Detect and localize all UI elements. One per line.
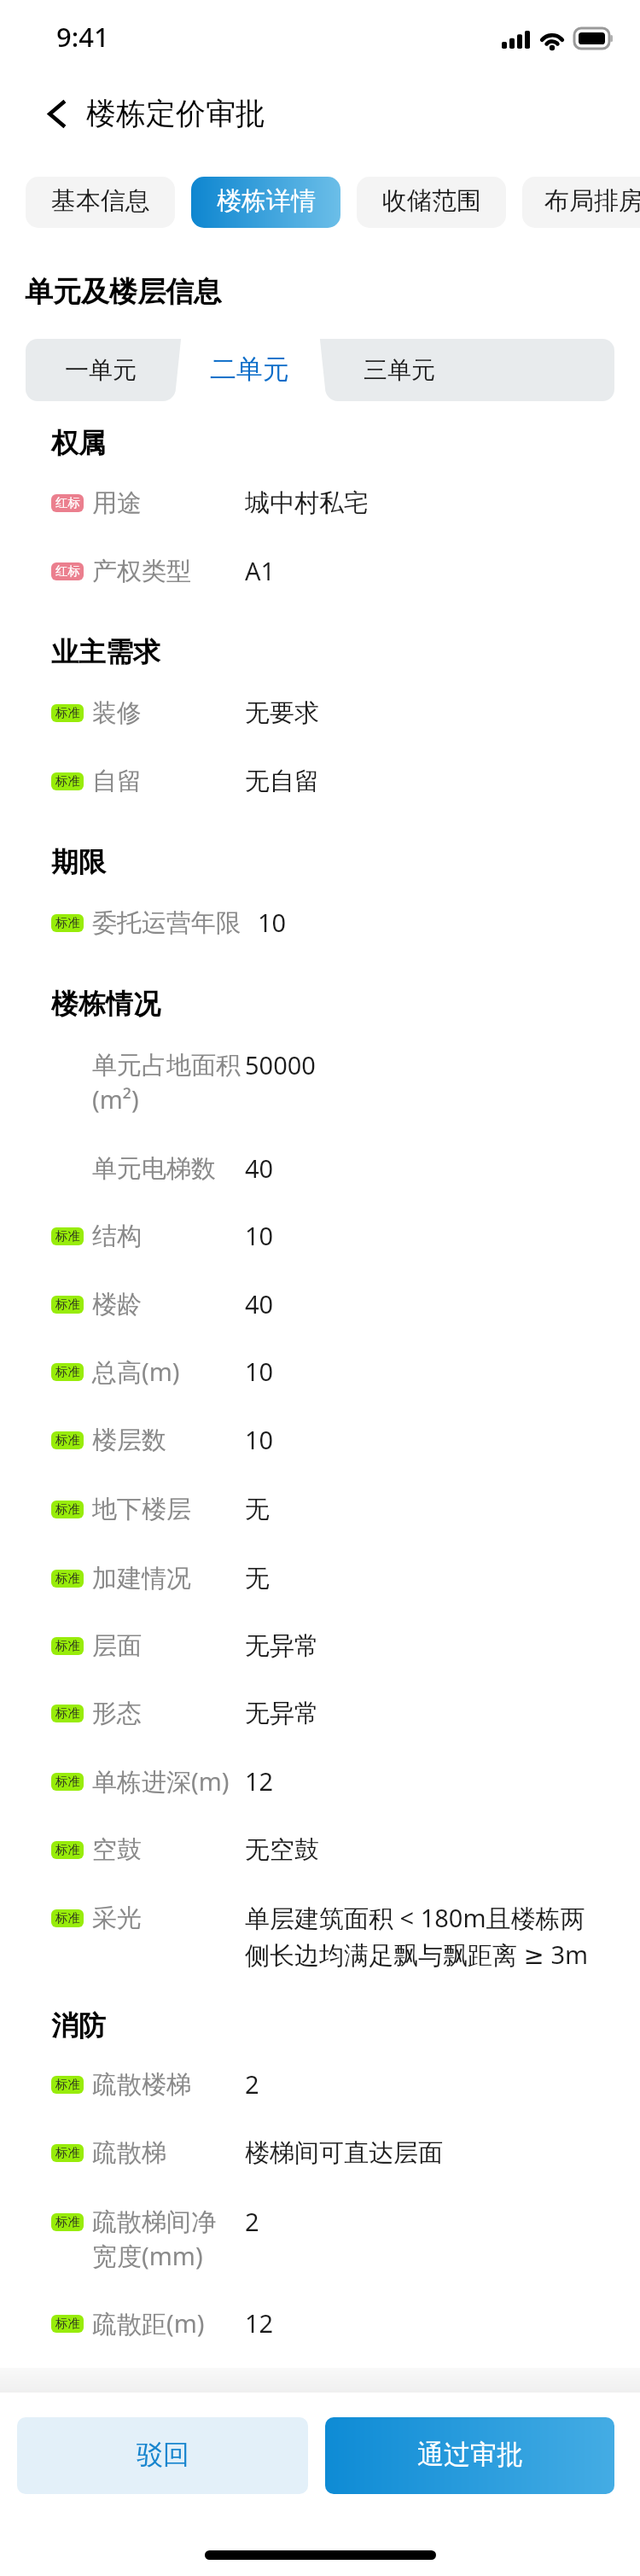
staticText: 2 (245, 2205, 603, 2239)
staticText: 采光 (92, 1901, 246, 1935)
staticText: 单元电梯数 (92, 1151, 246, 1186)
staticText: 基本信息 (51, 188, 150, 217)
staticText: 标准 (55, 1639, 80, 1653)
staticText: 用途 (92, 486, 246, 520)
staticText: 单栋进深(m) (92, 1764, 246, 1800)
staticText: 10 (258, 906, 616, 940)
staticText: 二单元 (210, 355, 289, 386)
staticText: 楼层数 (92, 1423, 246, 1457)
staticText: 标准 (55, 706, 80, 720)
staticText: 标准 (55, 1775, 80, 1789)
staticText: 无 (245, 1492, 603, 1526)
staticText: 期限 (51, 845, 106, 881)
staticText: 疏散距(m) (92, 2306, 246, 2342)
staticText: 三单元 (364, 355, 435, 386)
button[interactable]: 二单元 (175, 339, 324, 401)
button[interactable]: 驳回 (17, 2417, 308, 2494)
staticText: 单层建筑面积 < 180m且楼栋两 侧长边均满足飘与飘距离 ≥ 3m (245, 1901, 603, 1973)
staticText: 标准 (55, 1502, 80, 1517)
staticText: 12 (245, 1764, 603, 1798)
staticText: 装修 (92, 696, 246, 730)
staticText: 10 (245, 1219, 603, 1253)
staticText: 加建情况 (92, 1561, 246, 1595)
staticText: 布局排房 (544, 188, 640, 217)
staticText: 标准 (55, 1297, 80, 1312)
button[interactable]: 通过审批 (325, 2417, 614, 2494)
staticText: 楼栋情况 (51, 987, 160, 1023)
staticText: 红标 (55, 564, 80, 579)
staticText: 红标 (55, 496, 80, 510)
staticText: 楼梯间可直达层面 (245, 2136, 603, 2170)
button[interactable]: 布局排房 (522, 177, 640, 228)
staticText: 驳回 (137, 2440, 189, 2471)
staticText: 无要求 (245, 696, 603, 730)
staticText: 40 (245, 1287, 603, 1321)
staticText: 单元及楼层信息 (25, 275, 222, 311)
staticText: 一单元 (65, 355, 137, 386)
staticText: 形态 (92, 1696, 246, 1730)
staticText: A1 (245, 554, 603, 588)
staticText: 楼栋详情 (217, 188, 316, 217)
staticText: 产权类型 (92, 554, 246, 588)
staticText: 标准 (55, 916, 80, 930)
button[interactable]: 三单元 (324, 339, 474, 401)
staticText: 标准 (55, 1571, 80, 1586)
staticText: 无自留 (245, 764, 603, 798)
staticText: 城中村私宅 (245, 486, 603, 520)
staticText: 委托运营年限 (92, 906, 246, 940)
staticText: 总高(m) (92, 1355, 246, 1390)
staticText: 标准 (55, 2215, 80, 2229)
staticText: 无异常 (245, 1629, 603, 1663)
staticText: 疏散楼梯 (92, 2067, 246, 2101)
staticText: 40 (245, 1151, 603, 1186)
staticText: 标准 (55, 2078, 80, 2092)
staticText: 标准 (55, 2146, 80, 2160)
staticText: 消防 (51, 2008, 106, 2044)
staticText: 9:41 (56, 22, 109, 54)
staticText: 10 (245, 1355, 603, 1389)
staticText: 自留 (92, 764, 246, 798)
staticText: 标准 (55, 1229, 80, 1244)
staticText: 标准 (55, 1911, 80, 1926)
button[interactable]: 收储范围 (357, 177, 506, 228)
button[interactable]: 一单元 (26, 339, 175, 401)
staticText: 楼栋定价审批 (86, 97, 265, 133)
staticText: 楼龄 (92, 1287, 246, 1321)
staticText: 地下楼层 (92, 1492, 246, 1526)
staticText: 标准 (55, 1433, 80, 1448)
button[interactable]: Back (28, 85, 84, 142)
staticText: 疏散梯 (92, 2136, 246, 2170)
staticText: 2 (245, 2067, 603, 2101)
staticText: 通过审批 (417, 2440, 523, 2471)
staticText: 标准 (55, 774, 80, 789)
staticText: 无 (245, 1561, 603, 1595)
staticText: 标准 (55, 1843, 80, 1857)
staticText: 10 (245, 1423, 603, 1457)
staticText: 层面 (92, 1629, 246, 1663)
staticText: 无异常 (245, 1696, 603, 1730)
staticText: 结构 (92, 1219, 246, 1253)
staticText: 疏散梯间净 宽度(mm) (92, 2205, 246, 2275)
staticText: 收储范围 (382, 188, 481, 217)
staticText: 单元占地面积 (m²) (92, 1048, 246, 1116)
staticText: 无空鼓 (245, 1833, 603, 1867)
staticText: 权属 (51, 426, 106, 462)
button[interactable]: 楼栋详情 (191, 177, 340, 228)
staticText: 12 (245, 2306, 603, 2340)
staticText: 空鼓 (92, 1833, 246, 1867)
staticText: 50000 (245, 1048, 603, 1082)
button[interactable]: 基本信息 (26, 177, 175, 228)
staticText: 标准 (55, 2317, 80, 2331)
staticText: 标准 (55, 1706, 80, 1721)
staticText: 标准 (55, 1365, 80, 1379)
staticText: 业主需求 (51, 635, 160, 671)
